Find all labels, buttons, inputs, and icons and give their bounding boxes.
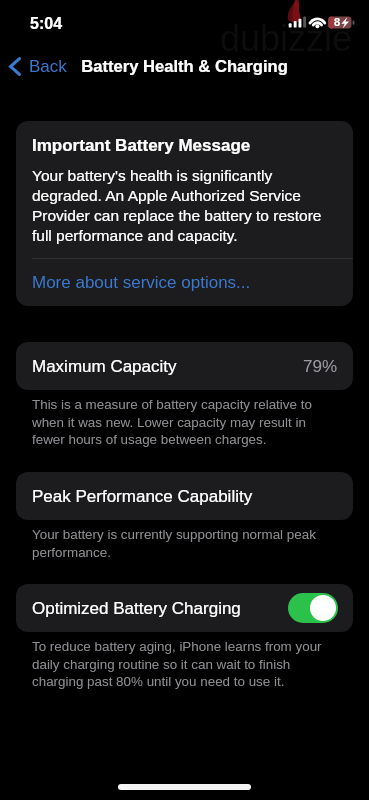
staticText: dubizzle [220, 18, 353, 58]
button[interactable]: More about service options... [16, 259, 353, 306]
staticText: This is a measure of battery capacity re… [32, 397, 328, 447]
button[interactable]: Maximum Capacity [16, 342, 353, 390]
other: Optimized Battery Charging toggle [288, 593, 338, 623]
staticText: 79% [303, 357, 338, 376]
staticText: Back [29, 57, 67, 76]
staticText: Optimized Battery Charging [32, 599, 241, 618]
staticText: Peak Performance Capability [32, 487, 253, 506]
button[interactable]: Peak Performance Capability [16, 472, 353, 520]
staticText: More about service options... [32, 273, 251, 292]
staticText: Your battery is currently supporting nor… [32, 527, 328, 560]
staticText: Battery Health & Charging [81, 57, 288, 76]
staticText: 5:04 [30, 15, 63, 33]
staticText: Maximum Capacity [32, 357, 177, 376]
button[interactable]: Optimized Battery Charging [16, 584, 353, 632]
staticText: Your battery's health is significantly d… [32, 167, 337, 244]
staticText: To reduce battery aging, iPhone learns f… [32, 639, 328, 689]
staticText: Important Battery Message [32, 136, 251, 155]
button[interactable]: Back [0, 53, 77, 80]
staticText: 8 [334, 16, 341, 28]
